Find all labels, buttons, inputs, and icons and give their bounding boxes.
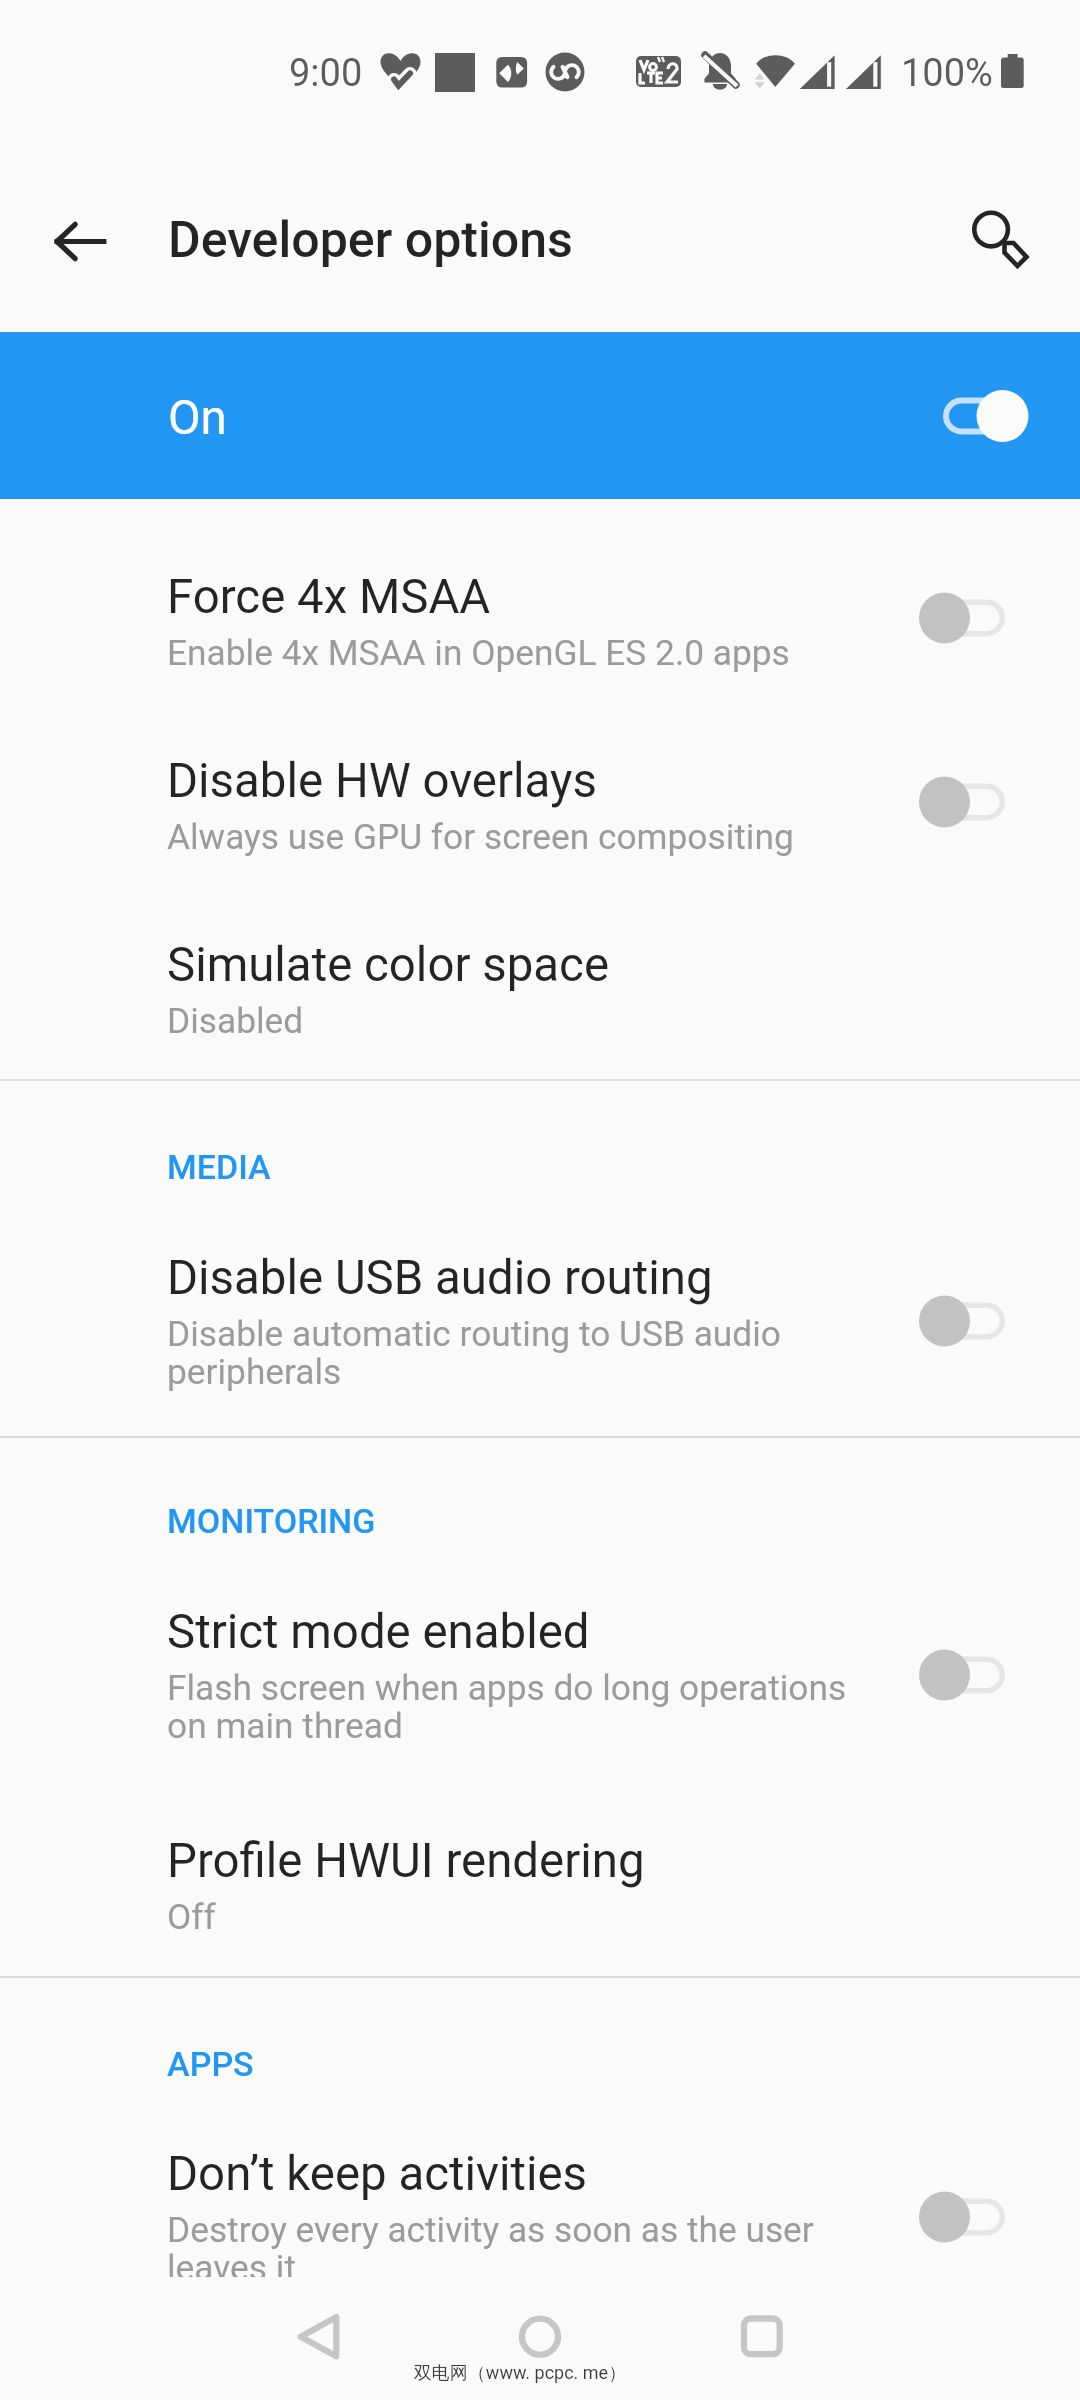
- staticText: Force 4x MSAA: [167, 569, 927, 625]
- button[interactable]: [0, 1596, 1080, 1738]
- button[interactable]: [0, 2138, 1080, 2277]
- staticText: Disable USB audio routing: [167, 1250, 927, 1306]
- staticText: 9:00: [289, 51, 449, 96]
- button[interactable]: Force 4x MSAA: [880, 563, 1080, 673]
- staticText: MONITORING: [167, 1501, 1067, 1541]
- button[interactable]: Back: [264, 2281, 376, 2393]
- button[interactable]: [0, 929, 1080, 1033]
- staticText: Don’t keep activities: [167, 2146, 927, 2202]
- staticText: 双电网（www. pcpc. me）: [280, 2362, 760, 2385]
- staticText: leaves it: [167, 2247, 927, 2277]
- staticText: Profile HWUI rendering: [167, 1833, 927, 1889]
- button[interactable]: [0, 1242, 1080, 1384]
- staticText: Developer options: [168, 211, 868, 270]
- staticText: On: [168, 390, 1068, 446]
- staticText: APPS: [167, 2044, 1067, 2084]
- button[interactable]: [0, 561, 1080, 665]
- button[interactable]: Back: [20, 182, 136, 298]
- button[interactable]: [0, 1825, 1080, 1929]
- button[interactable]: Home: [484, 2281, 596, 2393]
- button[interactable]: Recent apps: [706, 2281, 818, 2393]
- button[interactable]: Developer options on: [900, 332, 1080, 499]
- staticText: Flash screen when apps do long operation…: [167, 1667, 927, 1708]
- button[interactable]: Disable USB audio routing: [880, 1266, 1080, 1376]
- button[interactable]: Search: [942, 182, 1058, 298]
- staticText: 100%: [901, 51, 1080, 96]
- button[interactable]: [0, 745, 1080, 849]
- button[interactable]: Strict mode enabled: [880, 1620, 1080, 1730]
- staticText: Disabled: [167, 1000, 927, 1041]
- staticText: Strict mode enabled: [167, 1604, 927, 1660]
- staticText: MEDIA: [167, 1147, 1067, 1187]
- button[interactable]: Disable HW overlays: [880, 747, 1080, 857]
- button[interactable]: Don’t keep activities: [880, 2162, 1080, 2272]
- staticText: on main thread: [167, 1705, 927, 1746]
- staticText: Off: [167, 1896, 927, 1937]
- staticText: Disable automatic routing to USB audio: [167, 1313, 927, 1354]
- staticText: Disable HW overlays: [167, 753, 927, 809]
- staticText: Enable 4x MSAA in OpenGL ES 2.0 apps: [167, 632, 927, 673]
- staticText: Simulate color space: [167, 937, 927, 993]
- button[interactable]: [0, 332, 1080, 499]
- staticText: peripherals: [167, 1351, 927, 1392]
- staticText: Destroy every activity as soon as the us…: [167, 2209, 927, 2250]
- staticText: Always use GPU for screen compositing: [167, 816, 927, 857]
